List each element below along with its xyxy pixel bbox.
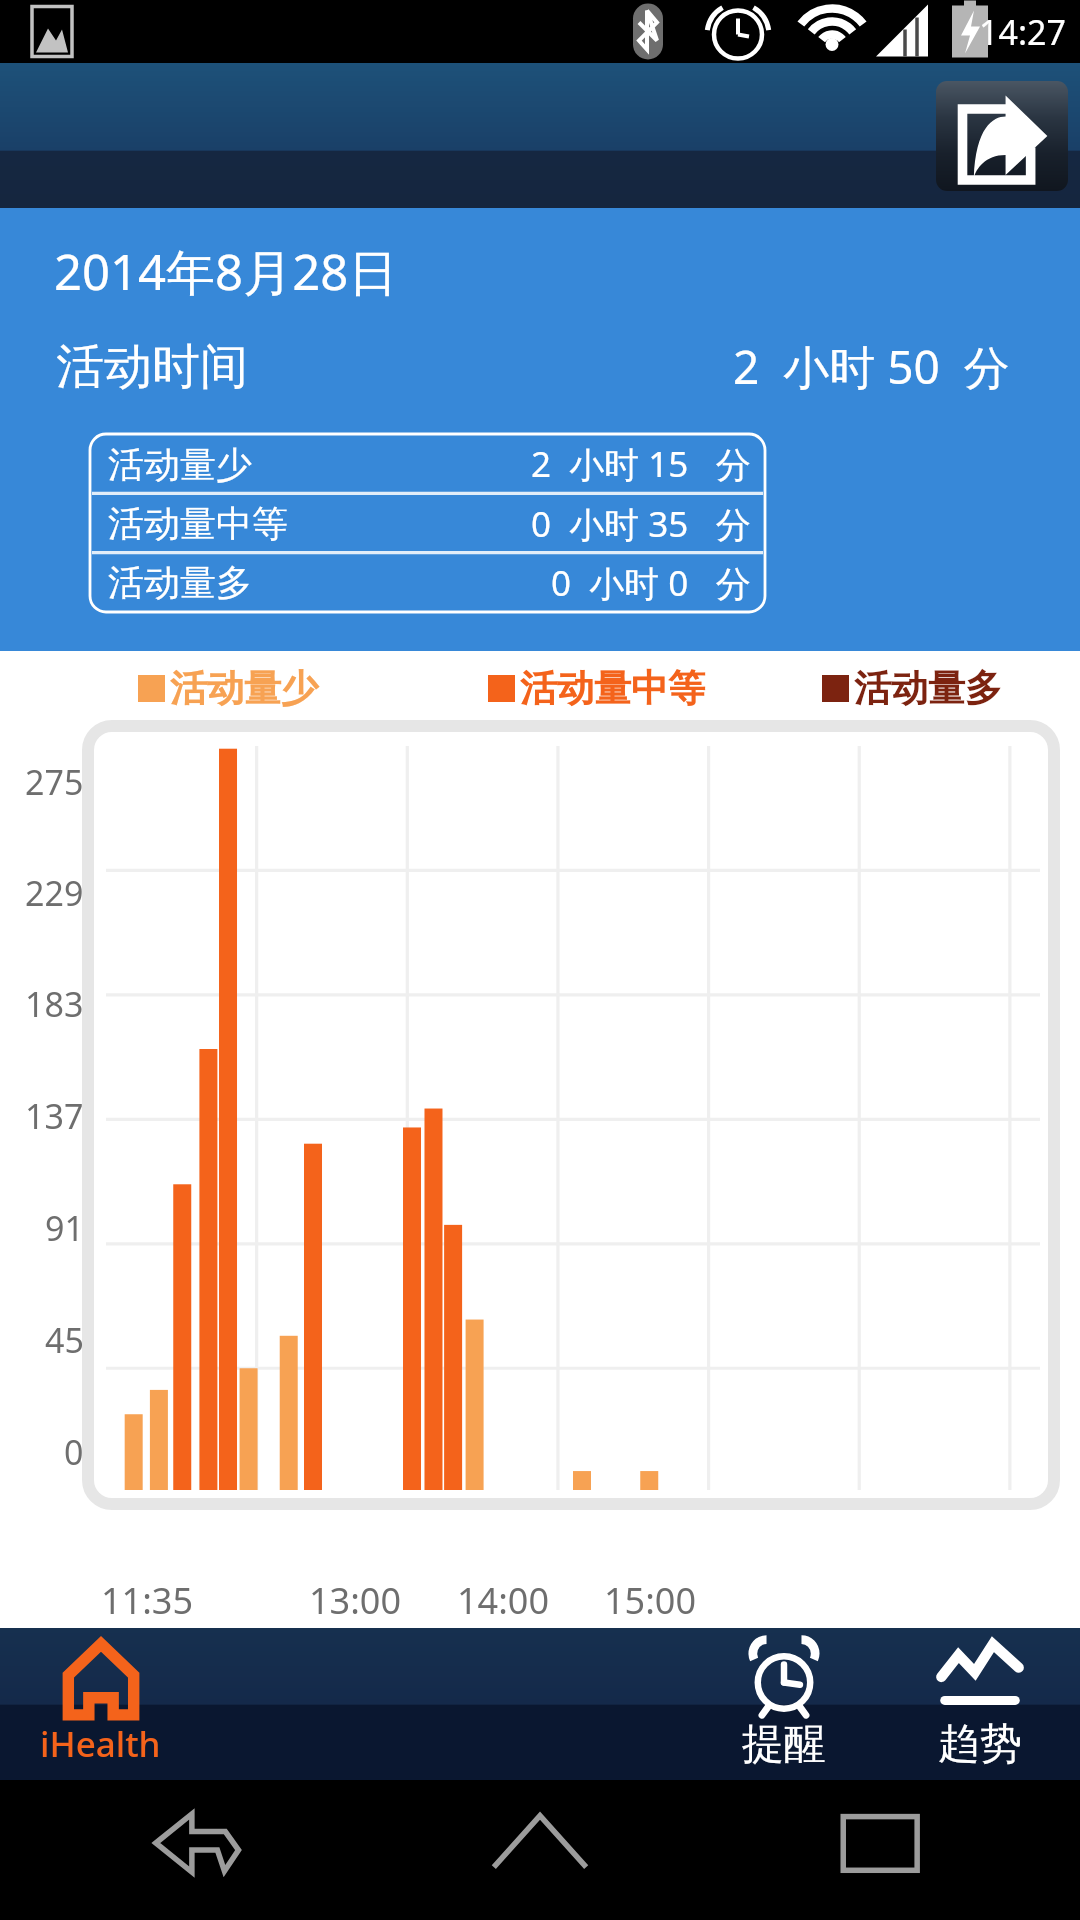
staticText: iHealth (40, 1720, 161, 1768)
staticText: 14:00 (457, 1576, 550, 1625)
staticText: 趋势 (938, 1718, 1022, 1771)
button[interactable]: 活动量多 (108, 553, 751, 612)
staticText: 2 小时 50 分 (733, 335, 1010, 398)
staticText: 183 (25, 981, 84, 1027)
staticText: 11:35 (101, 1576, 194, 1625)
staticText: 活动量中等 (108, 501, 288, 546)
staticText: 45 (45, 1317, 84, 1363)
staticText: 137 (25, 1093, 84, 1139)
staticText: 活动时间 (56, 337, 248, 397)
staticText: 活动量少 (170, 665, 318, 712)
staticText: 91 (45, 1205, 84, 1251)
button[interactable]: 活动量少 (138, 665, 318, 712)
staticText: 15:00 (604, 1576, 697, 1625)
staticText: 活动量多 (854, 665, 1002, 712)
button[interactable]: 活动量少 (108, 434, 751, 494)
staticText: 2 小时 15 分 (531, 440, 751, 488)
staticText: 0 (64, 1429, 84, 1475)
staticText: 229 (25, 870, 84, 916)
button[interactable]: 提醒 (688, 1628, 879, 1780)
staticText: 0 小时 0 分 (551, 559, 751, 607)
staticText: 14:27 (979, 9, 1066, 55)
button[interactable]: Share (936, 81, 1068, 191)
button[interactable]: 活动量中等 (108, 494, 751, 553)
button[interactable]: 活动量多 (822, 665, 1002, 712)
staticText: 活动量少 (108, 442, 252, 487)
staticText: 275 (25, 759, 84, 805)
button[interactable]: 趋势 (879, 1628, 1080, 1780)
staticText: 13:00 (309, 1576, 402, 1625)
staticText: 活动量中等 (520, 665, 705, 712)
staticText: 提醒 (742, 1718, 826, 1771)
staticText: 2014年8月28日 (54, 238, 398, 305)
staticText: 0 小时 35 分 (531, 500, 751, 548)
button[interactable]: 活动量中等 (488, 665, 705, 712)
staticText: 活动量多 (108, 560, 252, 605)
button[interactable]: iHealth (0, 1628, 201, 1780)
